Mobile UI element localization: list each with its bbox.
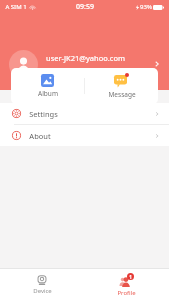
button[interactable]: 1 — [84, 269, 169, 300]
staticText: 1 — [129, 274, 132, 280]
button[interactable]: About — [0, 125, 169, 146]
staticText: Profile — [117, 289, 136, 297]
button[interactable]: Settings — [0, 103, 169, 124]
staticText: 93% — [140, 3, 152, 11]
staticText: Message — [108, 90, 136, 99]
other: Account details — [153, 60, 161, 68]
staticText: Device — [33, 287, 52, 295]
button[interactable]: Device — [0, 269, 84, 300]
button[interactable]: Album — [11, 68, 84, 104]
staticText: Album — [38, 89, 58, 98]
staticText: About — [29, 131, 51, 141]
staticText: 09:59 — [76, 2, 94, 12]
staticText: A SIM 1 — [5, 3, 27, 11]
button[interactable]: Message — [85, 68, 158, 104]
staticText: 2 camera device — [46, 66, 96, 75]
button[interactable]: user-JK21@yahoo.com — [0, 38, 169, 90]
staticText: Settings — [29, 109, 58, 119]
staticText: user-JK21@yahoo.com — [46, 53, 125, 63]
